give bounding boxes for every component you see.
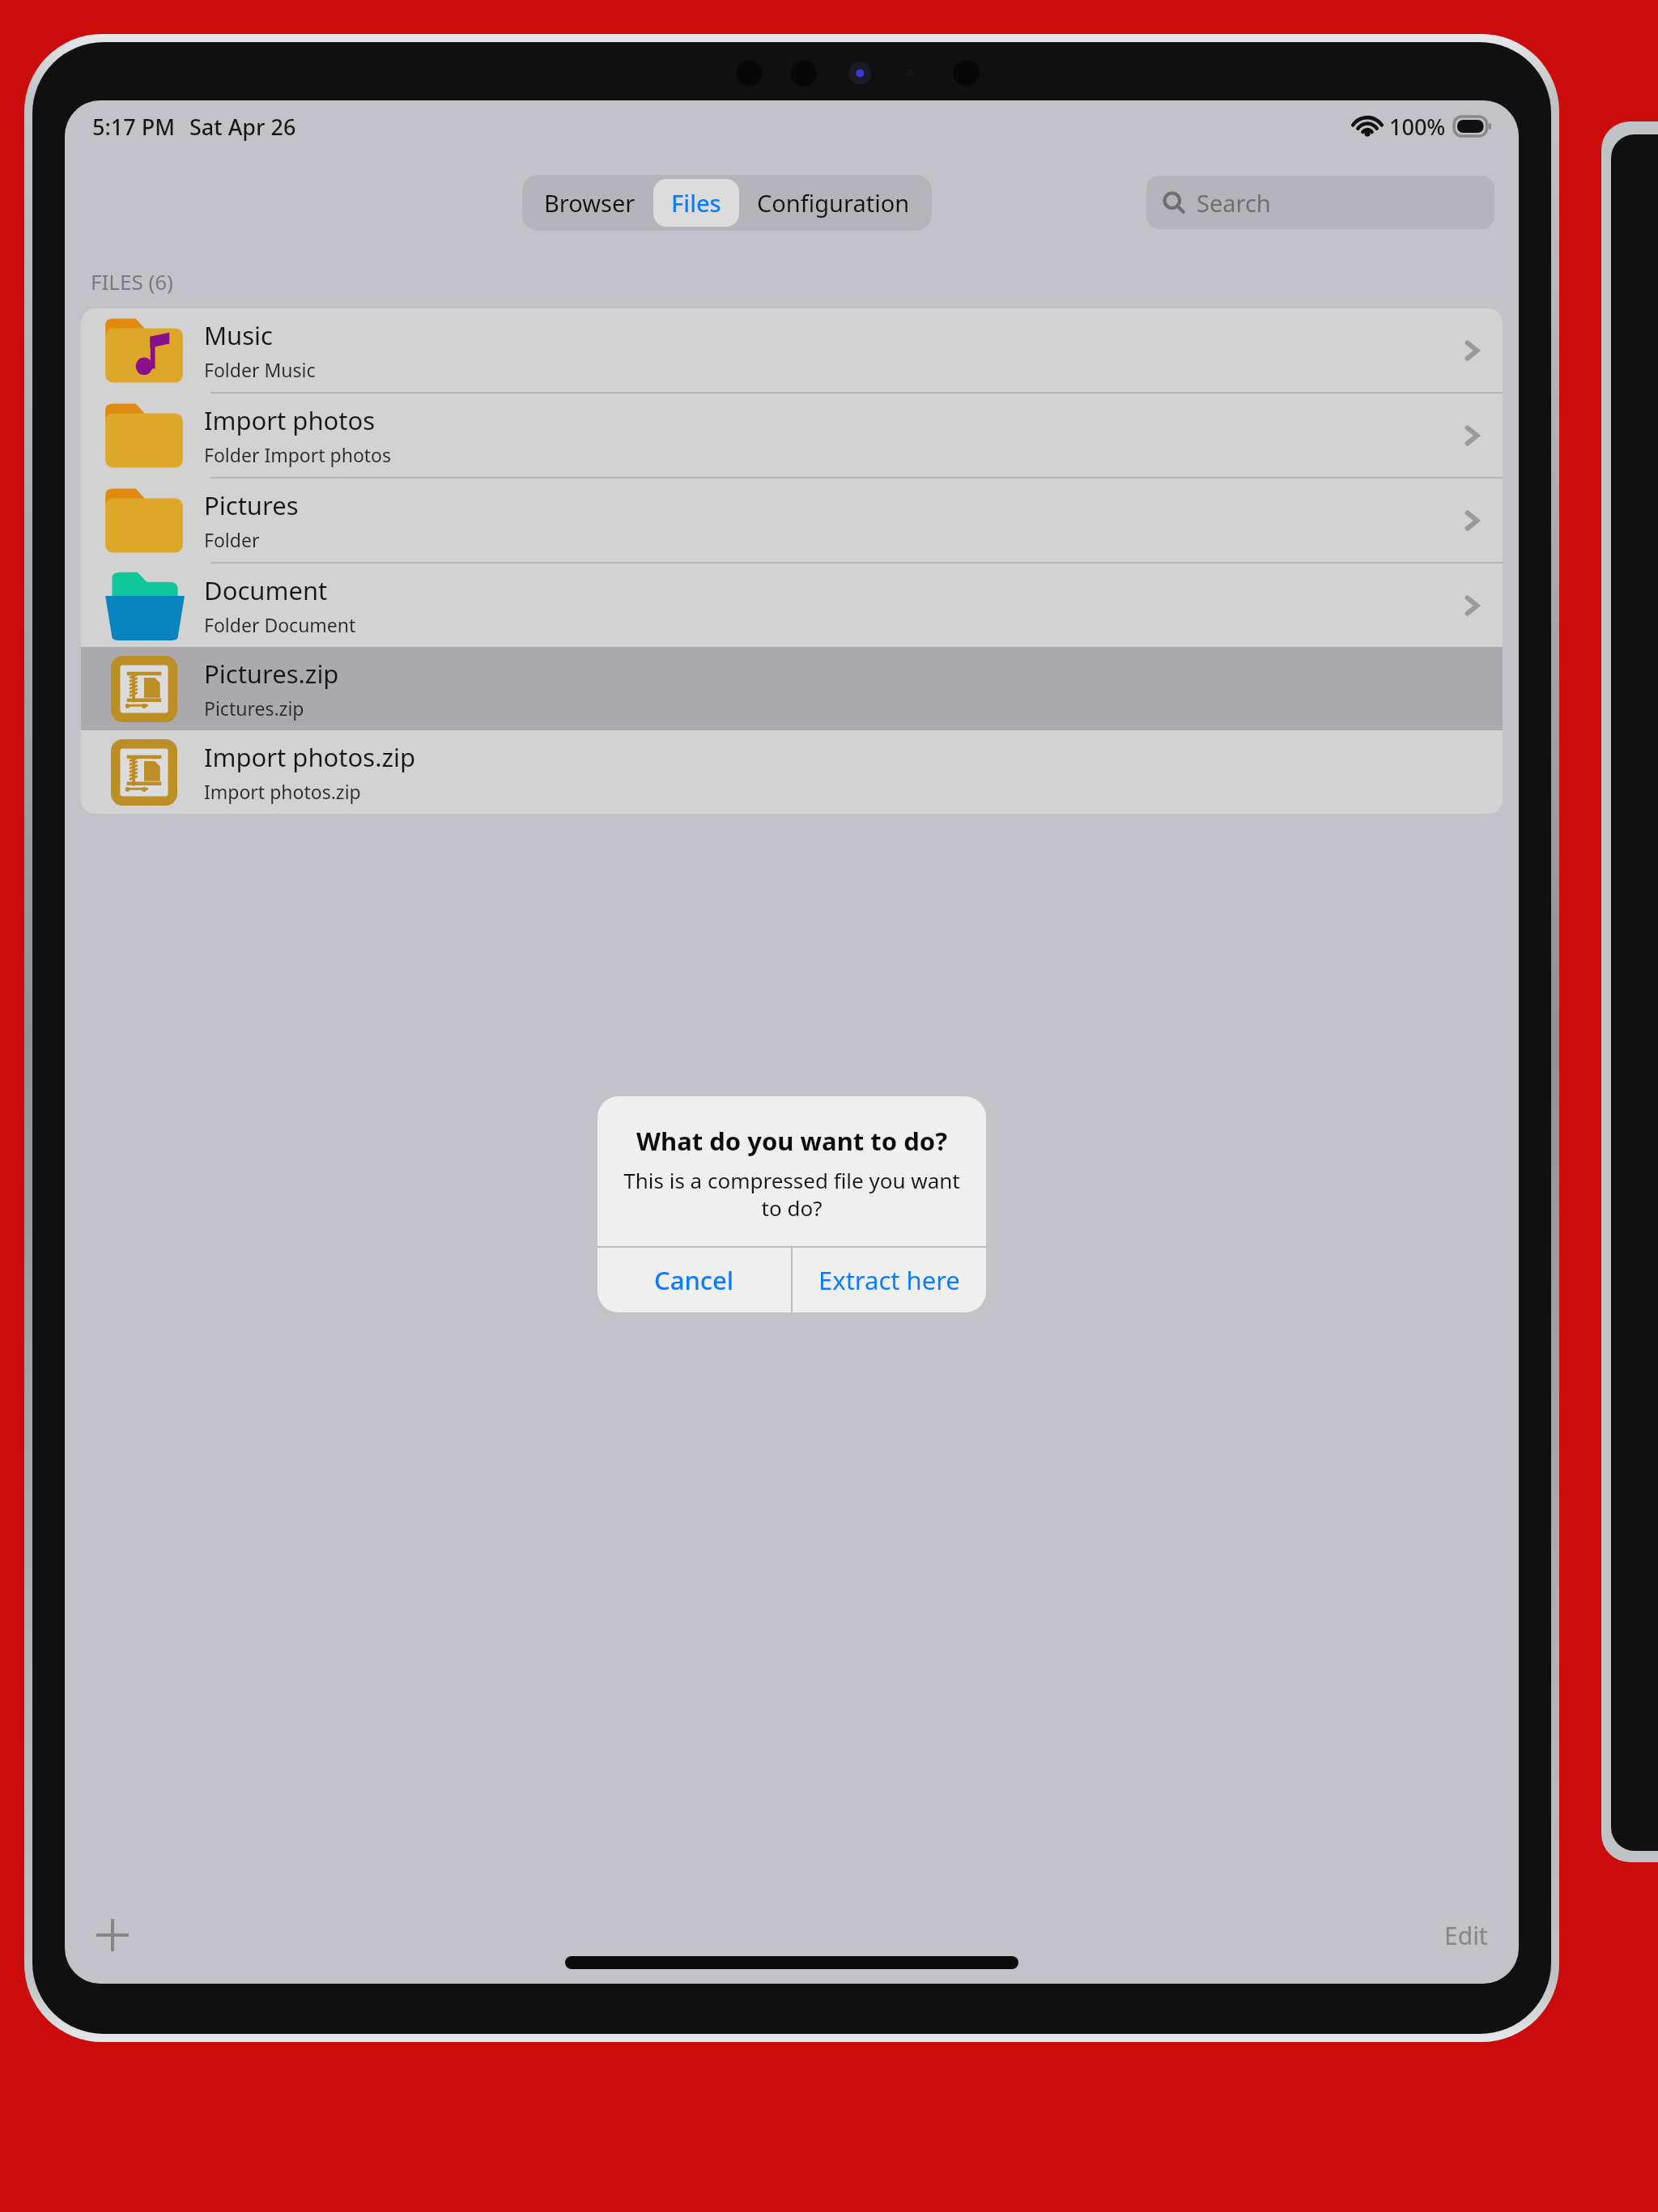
button[interactable]: Import photos.zip <box>81 730 1503 814</box>
button[interactable]: Pictures.zip <box>81 647 1503 730</box>
staticText: Search <box>1197 187 1271 219</box>
button[interactable]: Import photos <box>81 393 1503 477</box>
button[interactable]: Document <box>81 564 1503 647</box>
staticText: Configuration <box>757 187 910 219</box>
staticText: 100% <box>1389 112 1446 142</box>
button[interactable]: Pictures <box>81 479 1503 562</box>
staticText: Files <box>671 187 721 219</box>
button[interactable]: Add <box>81 1904 144 1967</box>
staticText: 5:17 PM <box>92 112 175 142</box>
staticText: Folder Music <box>204 357 316 382</box>
staticText: Music <box>204 318 274 352</box>
staticText: Sat Apr 26 <box>189 112 296 142</box>
staticText: Import photos.zip <box>204 740 416 774</box>
button[interactable]: Music <box>81 308 1503 392</box>
button[interactable]: Browser <box>526 179 653 227</box>
button[interactable]: Files <box>653 179 739 227</box>
staticText: What do you want to do? <box>622 1124 962 1158</box>
staticText: Import photos.zip <box>204 779 361 804</box>
staticText: Import photos <box>204 403 376 437</box>
staticText: Extract here <box>818 1263 960 1297</box>
button[interactable]: Extract here <box>793 1248 986 1312</box>
staticText: Edit <box>1444 1919 1488 1952</box>
staticText: This is a compressed file you want to do… <box>622 1166 962 1222</box>
button[interactable]: Edit <box>1430 1908 1503 1963</box>
staticText: Folder Import photos <box>204 442 392 467</box>
staticText: Cancel <box>654 1263 734 1297</box>
staticText: Document <box>204 573 328 607</box>
button[interactable]: Cancel <box>597 1248 791 1312</box>
staticText: Pictures.zip <box>204 696 304 721</box>
staticText: Pictures.zip <box>204 657 339 691</box>
button[interactable]: Configuration <box>739 179 928 227</box>
button[interactable]: Search <box>1146 176 1494 229</box>
staticText: Pictures <box>204 488 299 522</box>
staticText: FILES (6) <box>91 267 173 296</box>
staticText: Folder <box>204 527 260 552</box>
staticText: Browser <box>544 187 636 219</box>
staticText: Folder Document <box>204 612 356 637</box>
